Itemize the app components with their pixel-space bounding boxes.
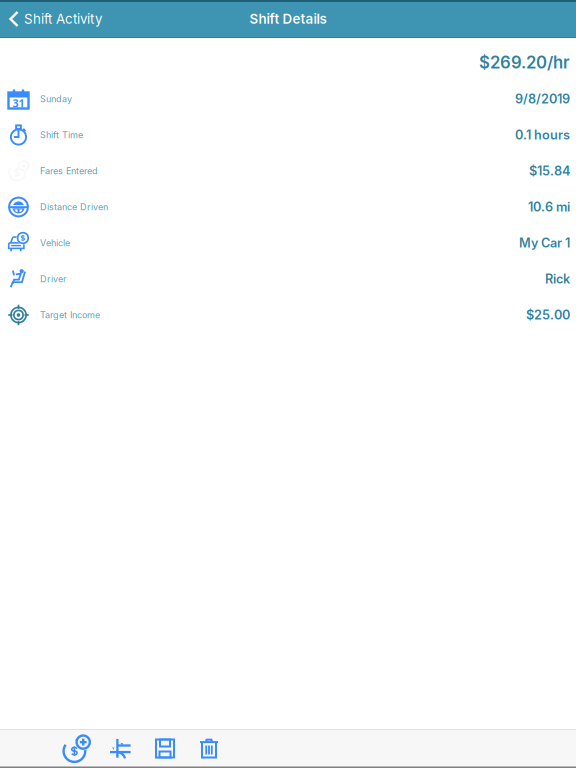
staticText: Sunday <box>40 93 72 104</box>
staticText: My Car 1 <box>519 235 570 251</box>
staticText: Shift Details <box>249 11 326 27</box>
staticText: 10.6 mi <box>528 199 570 215</box>
staticText: Target Income <box>40 309 100 320</box>
button[interactable]: Add Fare <box>55 729 99 768</box>
button[interactable]: Shift Activity <box>0 0 102 38</box>
staticText: Rick <box>545 271 570 287</box>
staticText: Shift Time <box>40 129 83 140</box>
staticText: 31 <box>12 96 24 110</box>
button[interactable]: Delete <box>187 729 231 768</box>
staticText: Driver <box>40 273 66 284</box>
button[interactable]: Vehicle <box>0 225 576 261</box>
staticText: 9/8/2019 <box>515 91 570 107</box>
button[interactable]: Target Income <box>0 297 576 333</box>
staticText: Fares Entered <box>40 165 98 176</box>
button[interactable]: Shift Time <box>0 117 576 153</box>
staticText: Distance Driven <box>40 201 108 212</box>
button[interactable]: Save <box>143 729 187 768</box>
staticText: Shift Activity <box>24 11 102 27</box>
staticText: Vehicle <box>40 237 70 248</box>
staticText: $15.84 <box>529 163 570 179</box>
button[interactable]: Fares Entered <box>0 153 576 189</box>
staticText: $25.00 <box>526 307 570 323</box>
button[interactable]: Routes <box>99 729 143 768</box>
button[interactable]: 31 <box>0 81 576 117</box>
button[interactable]: Driver <box>0 261 576 297</box>
staticText: $269.20/hr <box>479 52 570 73</box>
button[interactable]: Distance Driven <box>0 189 576 225</box>
staticText: 0.1 hours <box>515 127 570 143</box>
